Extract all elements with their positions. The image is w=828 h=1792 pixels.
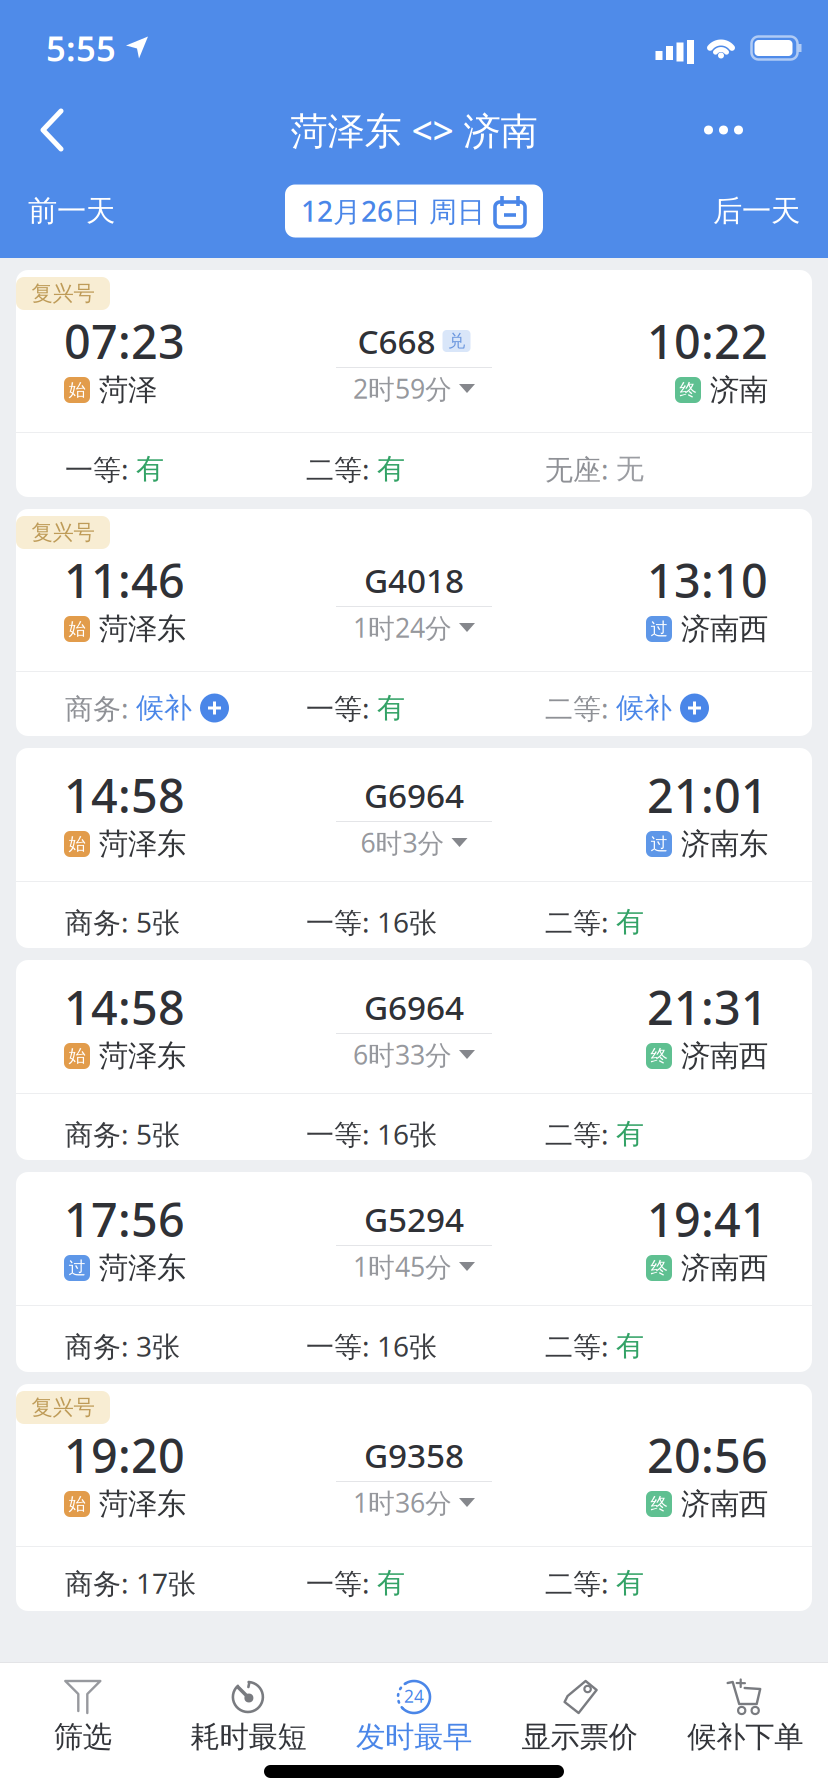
button[interactable]: 14:58 bbox=[16, 748, 812, 948]
staticText: 6时3分 bbox=[360, 825, 444, 860]
button[interactable]: 显示票价 bbox=[497, 1663, 662, 1755]
staticText: 有 bbox=[616, 1117, 644, 1151]
staticText: 07:23 bbox=[64, 310, 185, 372]
staticText: 菏泽 bbox=[99, 372, 157, 408]
staticText: 复兴号 bbox=[31, 1394, 94, 1421]
staticText: 一等: bbox=[306, 903, 377, 941]
staticText: 1时45分 bbox=[353, 1249, 452, 1284]
button[interactable]: 复兴号 bbox=[16, 509, 812, 736]
button[interactable]: 1时24分 bbox=[353, 607, 475, 648]
button[interactable]: 耗时最短 bbox=[166, 1663, 331, 1755]
staticText: G9358 bbox=[364, 1433, 464, 1477]
button[interactable]: 复兴号 bbox=[16, 1384, 812, 1611]
staticText: 无座: bbox=[545, 450, 616, 488]
staticText: 二等: bbox=[306, 450, 377, 488]
staticText: 14:58 bbox=[64, 764, 185, 826]
staticText: 一等: bbox=[306, 1115, 377, 1153]
staticText: 始 bbox=[68, 833, 85, 855]
staticText: 终 bbox=[650, 1257, 667, 1279]
staticText: 有 bbox=[377, 691, 405, 725]
staticText: 有 bbox=[616, 1329, 644, 1363]
staticText: 1时24分 bbox=[353, 610, 452, 645]
staticText: 兑 bbox=[448, 330, 465, 352]
staticText: 二等: bbox=[545, 689, 616, 727]
staticText: 5张 bbox=[136, 1115, 180, 1153]
staticText: 过 bbox=[650, 833, 667, 855]
staticText: 候补 bbox=[616, 691, 672, 725]
button[interactable]: 后一天 bbox=[713, 193, 800, 229]
staticText: 19:41 bbox=[647, 1188, 768, 1250]
staticText: 始 bbox=[68, 1493, 85, 1515]
staticText: 终 bbox=[650, 1045, 667, 1067]
staticText: G5294 bbox=[364, 1197, 464, 1241]
staticText: 候补下单 bbox=[687, 1719, 803, 1755]
staticText: 二等: bbox=[545, 903, 616, 941]
staticText: 1时36分 bbox=[353, 1485, 452, 1520]
staticText: 11:46 bbox=[64, 549, 185, 611]
staticText: 济南西 bbox=[681, 1250, 768, 1286]
button[interactable]: 1时45分 bbox=[353, 1246, 475, 1287]
staticText: 13:10 bbox=[647, 549, 768, 611]
staticText: 16张 bbox=[377, 903, 437, 941]
staticText: 10:22 bbox=[647, 310, 768, 372]
staticText: 济南西 bbox=[681, 1038, 768, 1074]
staticText: G4018 bbox=[364, 558, 464, 602]
staticText: 菏泽东 <> 济南 bbox=[290, 105, 537, 155]
staticText: 16张 bbox=[377, 1327, 437, 1365]
staticText: 筛选 bbox=[54, 1719, 112, 1755]
staticText: 始 bbox=[68, 379, 85, 401]
staticText: 二等: bbox=[545, 1115, 616, 1153]
staticText: 终 bbox=[679, 379, 696, 401]
staticText: 菏泽东 bbox=[99, 1486, 186, 1522]
staticText: 有 bbox=[136, 452, 164, 486]
button[interactable]: 筛选 bbox=[0, 1663, 166, 1755]
button[interactable]: 2时59分 bbox=[353, 368, 475, 409]
staticText: 发时最早 bbox=[356, 1719, 472, 1755]
staticText: C668 bbox=[357, 319, 435, 363]
staticText: 商务: bbox=[65, 1564, 136, 1602]
staticText: 菏泽东 bbox=[99, 826, 186, 862]
staticText: G6964 bbox=[364, 985, 464, 1029]
button[interactable]: 12月26日 周日 bbox=[285, 184, 543, 237]
button[interactable]: 6时3分 bbox=[360, 822, 467, 863]
button[interactable]: 14:58 bbox=[16, 960, 812, 1160]
staticText: 有 bbox=[616, 905, 644, 939]
staticText: 21:01 bbox=[647, 764, 768, 826]
staticText: 一等: bbox=[306, 1327, 377, 1365]
staticText: 复兴号 bbox=[31, 280, 94, 307]
staticText: 17:56 bbox=[64, 1188, 185, 1250]
staticText: 14:58 bbox=[64, 976, 185, 1038]
staticText: 始 bbox=[68, 1045, 85, 1067]
staticText: 商务: bbox=[65, 689, 136, 727]
staticText: 二等: bbox=[545, 1327, 616, 1365]
button[interactable]: 6时33分 bbox=[353, 1034, 475, 1075]
staticText: 前一天 bbox=[28, 193, 115, 229]
staticText: 6时33分 bbox=[353, 1037, 452, 1072]
staticText: G6964 bbox=[364, 773, 464, 817]
staticText: 耗时最短 bbox=[190, 1719, 306, 1755]
staticText: 一等: bbox=[306, 1564, 377, 1602]
staticText: 显示票价 bbox=[522, 1719, 638, 1755]
button[interactable]: 24 bbox=[331, 1663, 497, 1755]
staticText: 候补 bbox=[136, 691, 192, 725]
staticText: 20:56 bbox=[647, 1424, 768, 1486]
staticText: 过 bbox=[68, 1257, 85, 1279]
staticText: 无 bbox=[616, 452, 644, 486]
staticText: 有 bbox=[377, 452, 405, 486]
button[interactable]: 复兴号 bbox=[16, 270, 812, 497]
staticText: 始 bbox=[68, 618, 85, 640]
button[interactable]: 前一天 bbox=[28, 193, 115, 229]
staticText: 有 bbox=[377, 1566, 405, 1600]
staticText: 19:20 bbox=[64, 1424, 185, 1486]
button[interactable]: 17:56 bbox=[16, 1172, 812, 1372]
staticText: 16张 bbox=[377, 1115, 437, 1153]
button[interactable]: 候补下单 bbox=[662, 1663, 828, 1755]
staticText: 菏泽东 bbox=[99, 1250, 186, 1286]
button[interactable]: Back bbox=[40, 110, 64, 150]
staticText: 商务: bbox=[65, 1327, 136, 1365]
staticText: 商务: bbox=[65, 1115, 136, 1153]
staticText: 济南西 bbox=[681, 611, 768, 647]
button[interactable]: More bbox=[704, 110, 743, 150]
button[interactable]: 1时36分 bbox=[353, 1482, 475, 1523]
staticText: 菏泽东 bbox=[99, 1038, 186, 1074]
